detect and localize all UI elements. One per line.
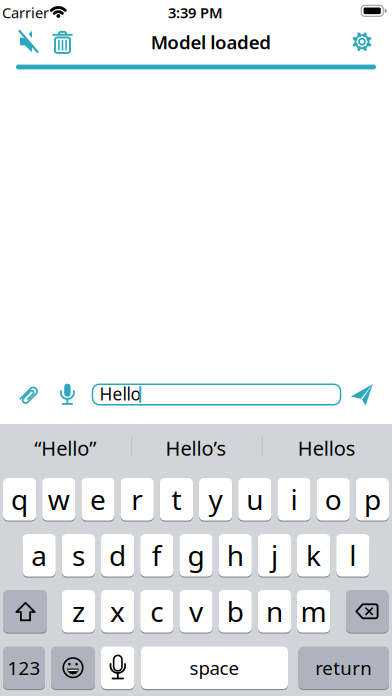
staticText: 123 [7,655,40,680]
staticText: Carrier [2,3,49,22]
staticText: p [364,481,381,518]
button[interactable] [14,26,42,56]
button[interactable]: d [101,534,134,576]
button[interactable]: s [62,534,95,576]
button[interactable]: q [3,478,36,520]
button[interactable] [101,646,134,689]
button[interactable]: p [356,478,389,520]
button[interactable]: x [101,590,134,632]
button[interactable] [51,646,95,689]
button[interactable] [49,27,75,57]
button[interactable] [3,590,47,632]
staticText: space [189,655,239,680]
button[interactable]: k [297,534,330,576]
staticText: o [325,481,342,518]
staticText: w [48,481,70,518]
button[interactable] [55,379,79,409]
button[interactable]: r [121,478,154,520]
staticText: l [349,537,356,574]
staticText: Model loaded [151,30,271,54]
staticText: Hello [99,382,140,405]
button[interactable]: w [42,478,75,520]
button[interactable]: c [140,590,173,632]
staticText: f [152,537,162,574]
staticText: u [246,481,263,518]
staticText: r [131,481,143,518]
button[interactable]: l [336,534,369,576]
staticText: s [72,537,85,574]
button[interactable]: z [62,590,95,632]
staticText: Hello’s [165,435,226,461]
staticText: m [301,593,327,630]
staticText: i [290,481,297,518]
staticText: e [90,481,106,518]
staticText: 3:39 PM [168,3,223,22]
button[interactable] [346,590,388,632]
button[interactable] [348,27,376,57]
staticText: g [187,537,204,574]
button[interactable] [16,381,42,409]
button[interactable]: t [160,478,193,520]
button[interactable]: b [219,590,252,632]
button[interactable]: Hello [92,384,340,405]
button[interactable]: “Hello” [1,428,129,468]
button[interactable]: return [298,646,389,689]
staticText: j [271,537,278,574]
button[interactable]: u [238,478,271,520]
staticText: “Hello” [34,435,96,461]
staticText: d [109,537,126,574]
button[interactable]: Hellos [263,428,391,468]
staticText: y [209,481,223,518]
button[interactable]: 123 [3,646,45,689]
staticText: v [189,593,203,630]
button[interactable]: Hello’s [132,428,260,468]
button[interactable]: f [140,534,173,576]
staticText: Hellos [298,435,356,461]
staticText: k [306,537,321,574]
staticText: return [315,655,372,680]
button[interactable]: a [23,534,56,576]
button[interactable]: j [258,534,291,576]
button[interactable]: e [81,478,115,520]
button[interactable]: h [219,534,252,576]
button[interactable]: v [179,590,213,632]
button[interactable]: space [141,646,288,689]
button[interactable]: i [277,478,311,520]
staticText: c [150,593,163,630]
button[interactable]: n [258,590,291,632]
staticText: b [227,593,244,630]
staticText: n [266,593,283,630]
button[interactable] [350,383,374,407]
button[interactable]: g [179,534,213,576]
staticText: x [110,593,125,630]
staticText: t [171,481,181,518]
button[interactable]: o [317,478,350,520]
staticText: a [31,537,47,574]
button[interactable]: y [199,478,232,520]
staticText: q [11,481,28,518]
staticText: h [227,537,244,574]
button[interactable]: m [297,590,330,632]
staticText: z [72,593,85,630]
